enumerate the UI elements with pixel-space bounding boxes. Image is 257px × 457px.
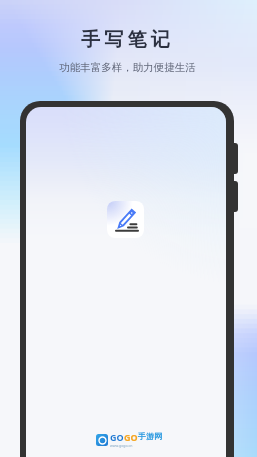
staticText: 功能丰富多样，助力便捷生活 (59, 61, 196, 74)
staticText: 手写笔记 (81, 28, 174, 52)
other: Volume button (228, 143, 238, 174)
other: Power button (228, 181, 238, 212)
staticText: 手游网 (138, 431, 162, 441)
staticText: GO (124, 431, 138, 443)
button[interactable] (107, 201, 144, 238)
staticText: GO (110, 431, 124, 443)
staticText: www.gogo.cn (110, 443, 133, 448)
